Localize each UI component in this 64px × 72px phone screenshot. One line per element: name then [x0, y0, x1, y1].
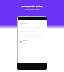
staticText: Collaborate faster: [21, 4, 43, 7]
staticText: with your team: [25, 8, 40, 11]
